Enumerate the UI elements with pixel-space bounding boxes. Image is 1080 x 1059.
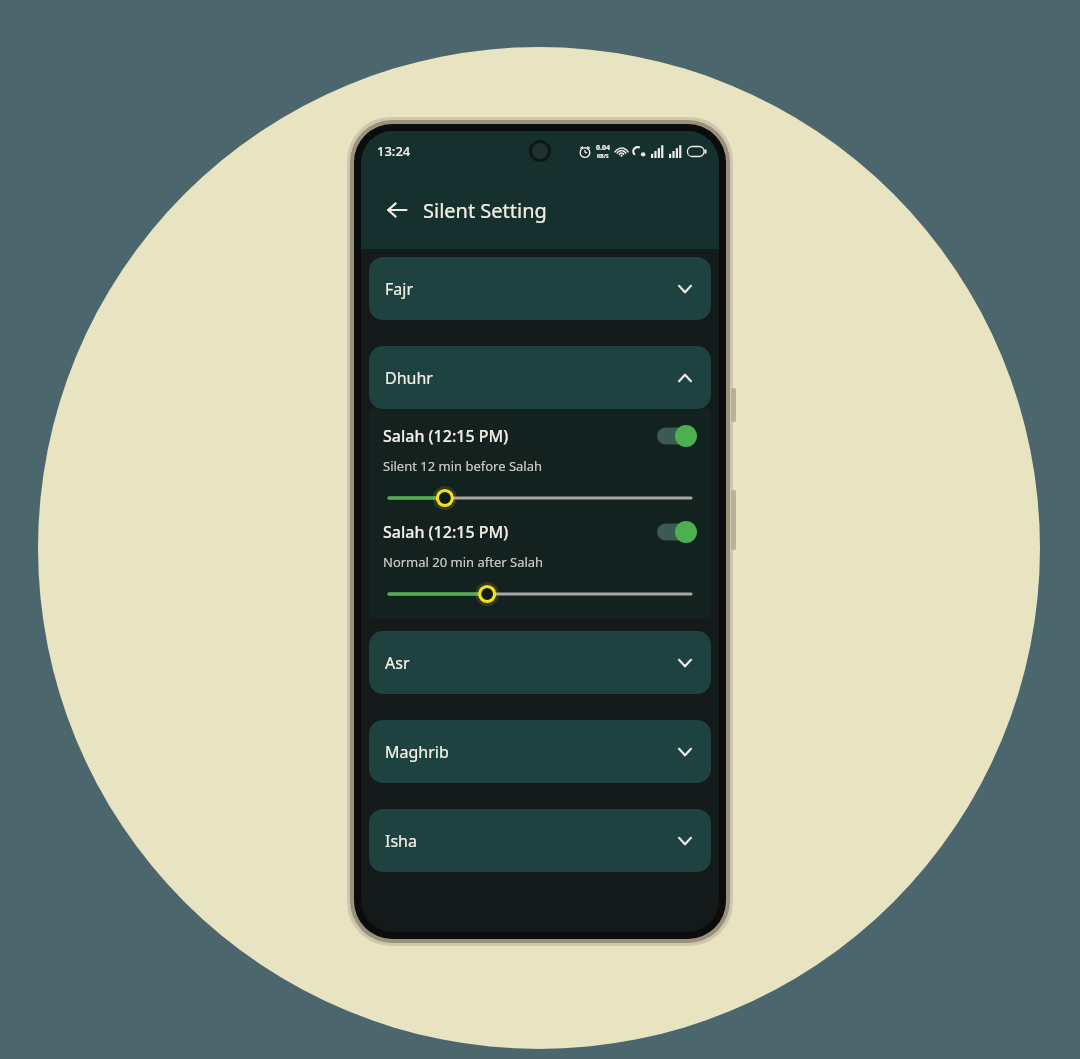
staticText: Asr xyxy=(385,652,675,674)
staticText: Silent 12 min before Salah xyxy=(383,457,543,475)
button[interactable]: Duration slider xyxy=(383,583,697,605)
staticText: Isha xyxy=(385,830,675,852)
staticText: Fajr xyxy=(385,278,675,300)
staticText: Dhuhr xyxy=(385,367,675,389)
button[interactable]: Fajr xyxy=(369,257,711,320)
button[interactable]: Isha xyxy=(369,809,711,872)
staticText: Silent Setting xyxy=(423,197,547,224)
button[interactable]: Dhuhr xyxy=(369,346,711,409)
button[interactable]: Maghrib xyxy=(369,720,711,783)
staticText: Maghrib xyxy=(385,741,675,763)
staticText: KB/S xyxy=(597,153,609,160)
button[interactable]: Toggle silent xyxy=(657,521,697,543)
button[interactable]: Duration slider xyxy=(383,487,697,509)
button[interactable]: Asr xyxy=(369,631,711,694)
button[interactable]: Back xyxy=(379,192,415,228)
button[interactable]: Toggle silent xyxy=(657,425,697,447)
staticText: 13:24 xyxy=(377,142,411,160)
staticText: Salah (12:15 PM) xyxy=(383,425,657,447)
staticText: Salah (12:15 PM) xyxy=(383,521,657,543)
staticText: Normal 20 min after Salah xyxy=(383,553,544,571)
staticText: 0.04 xyxy=(596,143,610,153)
